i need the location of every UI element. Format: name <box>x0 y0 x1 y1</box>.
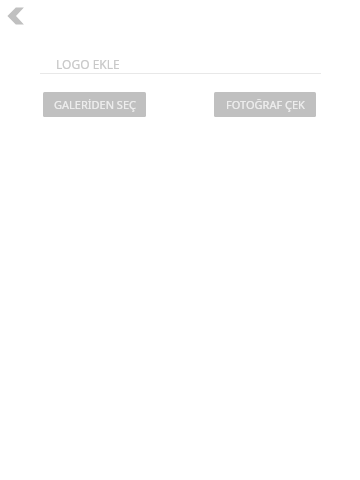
staticText: GALERİDEN SEÇ <box>54 97 136 112</box>
button[interactable]: GALERİDEN SEÇ <box>43 92 146 117</box>
button[interactable]: Back <box>0 0 32 32</box>
staticText: LOGO EKLE <box>56 56 120 72</box>
staticText: FOTOĞRAF ÇEK <box>226 97 305 112</box>
button[interactable]: FOTOĞRAF ÇEK <box>214 92 316 117</box>
